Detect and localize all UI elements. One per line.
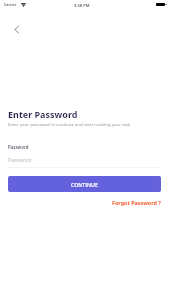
staticText: Enter your password to continue and star… [8, 121, 131, 127]
staticText: Password [8, 156, 32, 163]
button[interactable]: Password [8, 156, 161, 168]
staticText: Enter Password [8, 108, 78, 120]
staticText: Carrier [4, 2, 17, 7]
button[interactable]: Forgot Password ? [111, 198, 162, 207]
button[interactable]: Back [7, 18, 29, 40]
staticText: Password [8, 144, 29, 150]
staticText: 3:58 PM [74, 3, 90, 9]
button[interactable]: CONTINUE [8, 176, 161, 192]
staticText: Forgot Password ? [112, 199, 161, 206]
staticText: CONTINUE [71, 181, 98, 188]
